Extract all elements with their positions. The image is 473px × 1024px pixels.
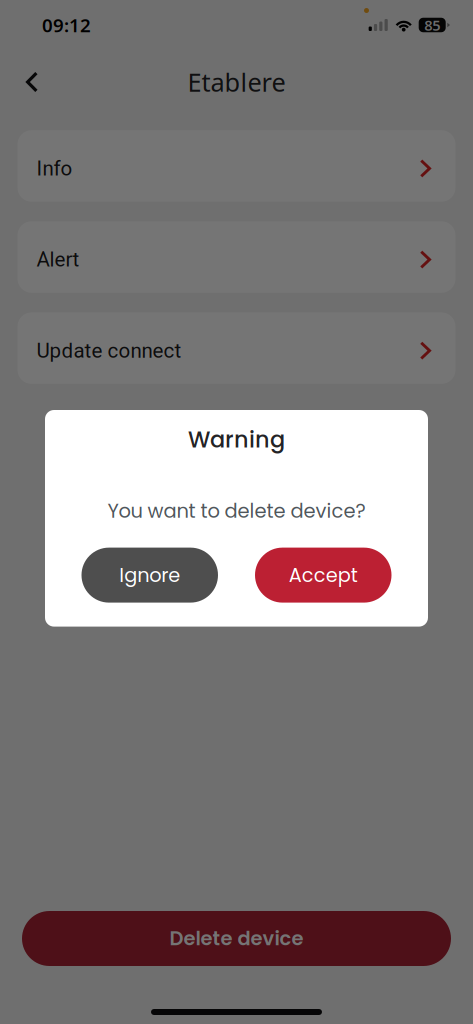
button[interactable]: Alert	[17, 221, 455, 293]
button[interactable]: Info	[17, 130, 455, 202]
button[interactable]: Back	[10, 60, 54, 104]
button[interactable]: Accept	[255, 548, 391, 603]
staticText: Warning	[188, 424, 285, 455]
staticText: Update connect	[36, 339, 181, 363]
button[interactable]: Delete device	[22, 911, 451, 966]
staticText: Info	[36, 156, 72, 180]
staticText: Accept	[289, 562, 358, 589]
staticText: Ignore	[119, 562, 180, 589]
staticText: You want to delete device?	[107, 497, 365, 525]
button[interactable]: Ignore	[81, 548, 218, 603]
staticText: 09:12	[42, 13, 91, 37]
button[interactable]: Update connect	[17, 312, 455, 384]
staticText: Etablere	[187, 65, 285, 99]
staticText: Delete device	[169, 925, 303, 952]
staticText: Alert	[36, 247, 79, 272]
staticText: 85	[424, 15, 440, 35]
